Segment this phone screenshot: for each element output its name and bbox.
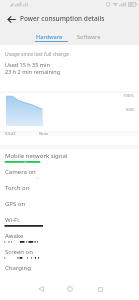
- staticText: Wi-Fi: [5, 216, 19, 224]
- staticText: 100%: [123, 93, 134, 99]
- staticText: Torch on: [5, 184, 30, 192]
- button[interactable]: Torch on: [0, 179, 139, 195]
- staticText: Camera on: [5, 168, 36, 176]
- button[interactable]: Hardware: [33, 30, 66, 45]
- button[interactable]: Software: [72, 30, 105, 45]
- staticText: Awake: [5, 232, 24, 240]
- staticText: Mobile network signal: [5, 152, 68, 160]
- staticText: 03:42: [5, 131, 16, 137]
- button[interactable]: GPS on: [0, 195, 139, 211]
- button[interactable]: Charging: [0, 259, 139, 275]
- staticText: Usage since last full charge: [5, 51, 69, 58]
- staticText: Now: [39, 131, 48, 137]
- staticText: Used 15 h 35 min: [5, 61, 50, 68]
- staticText: 60%: [126, 107, 135, 113]
- staticText: Screen on: [5, 248, 33, 256]
- staticText: GPS on: [5, 200, 26, 208]
- button[interactable]: Home: [60, 279, 80, 299]
- button[interactable]: Screen on: [0, 243, 139, 259]
- staticText: Software: [77, 33, 101, 41]
- staticText: Charging: [5, 264, 31, 272]
- button[interactable]: Camera on: [0, 163, 139, 179]
- staticText: Hardware: [36, 33, 63, 41]
- button[interactable]: Awake: [0, 227, 139, 243]
- button[interactable]: Recents: [90, 279, 110, 299]
- button[interactable]: Wi-Fi: [0, 211, 139, 227]
- button[interactable]: Back: [31, 279, 51, 299]
- staticText: 23 h 2 min remaining: [5, 68, 61, 75]
- button[interactable]: Mobile network signal: [0, 147, 139, 163]
- staticText: Power consumption details: [20, 14, 105, 23]
- button[interactable]: Back: [1, 9, 21, 29]
